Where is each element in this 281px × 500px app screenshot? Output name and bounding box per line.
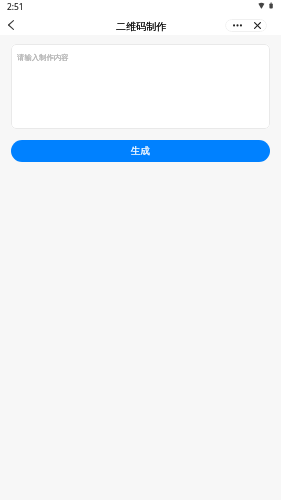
staticText: 2:51 (7, 1, 24, 12)
staticText: 请输入制作内容 (17, 53, 69, 62)
staticText: 二维码制作 (116, 20, 166, 33)
staticText: 生成 (131, 145, 151, 157)
staticText: 二维码制作 (116, 20, 166, 33)
staticText: 二维码制作 (116, 20, 166, 33)
button[interactable]: 请输入制作内容 (11, 44, 270, 129)
staticText: 2:51 (7, 1, 24, 12)
button[interactable]: Close (247, 19, 267, 32)
button[interactable]: Back (3, 17, 19, 33)
button[interactable]: More options (227, 19, 247, 32)
button[interactable]: 生成 (11, 140, 270, 162)
staticText: 请输入制作内容 (17, 53, 69, 62)
